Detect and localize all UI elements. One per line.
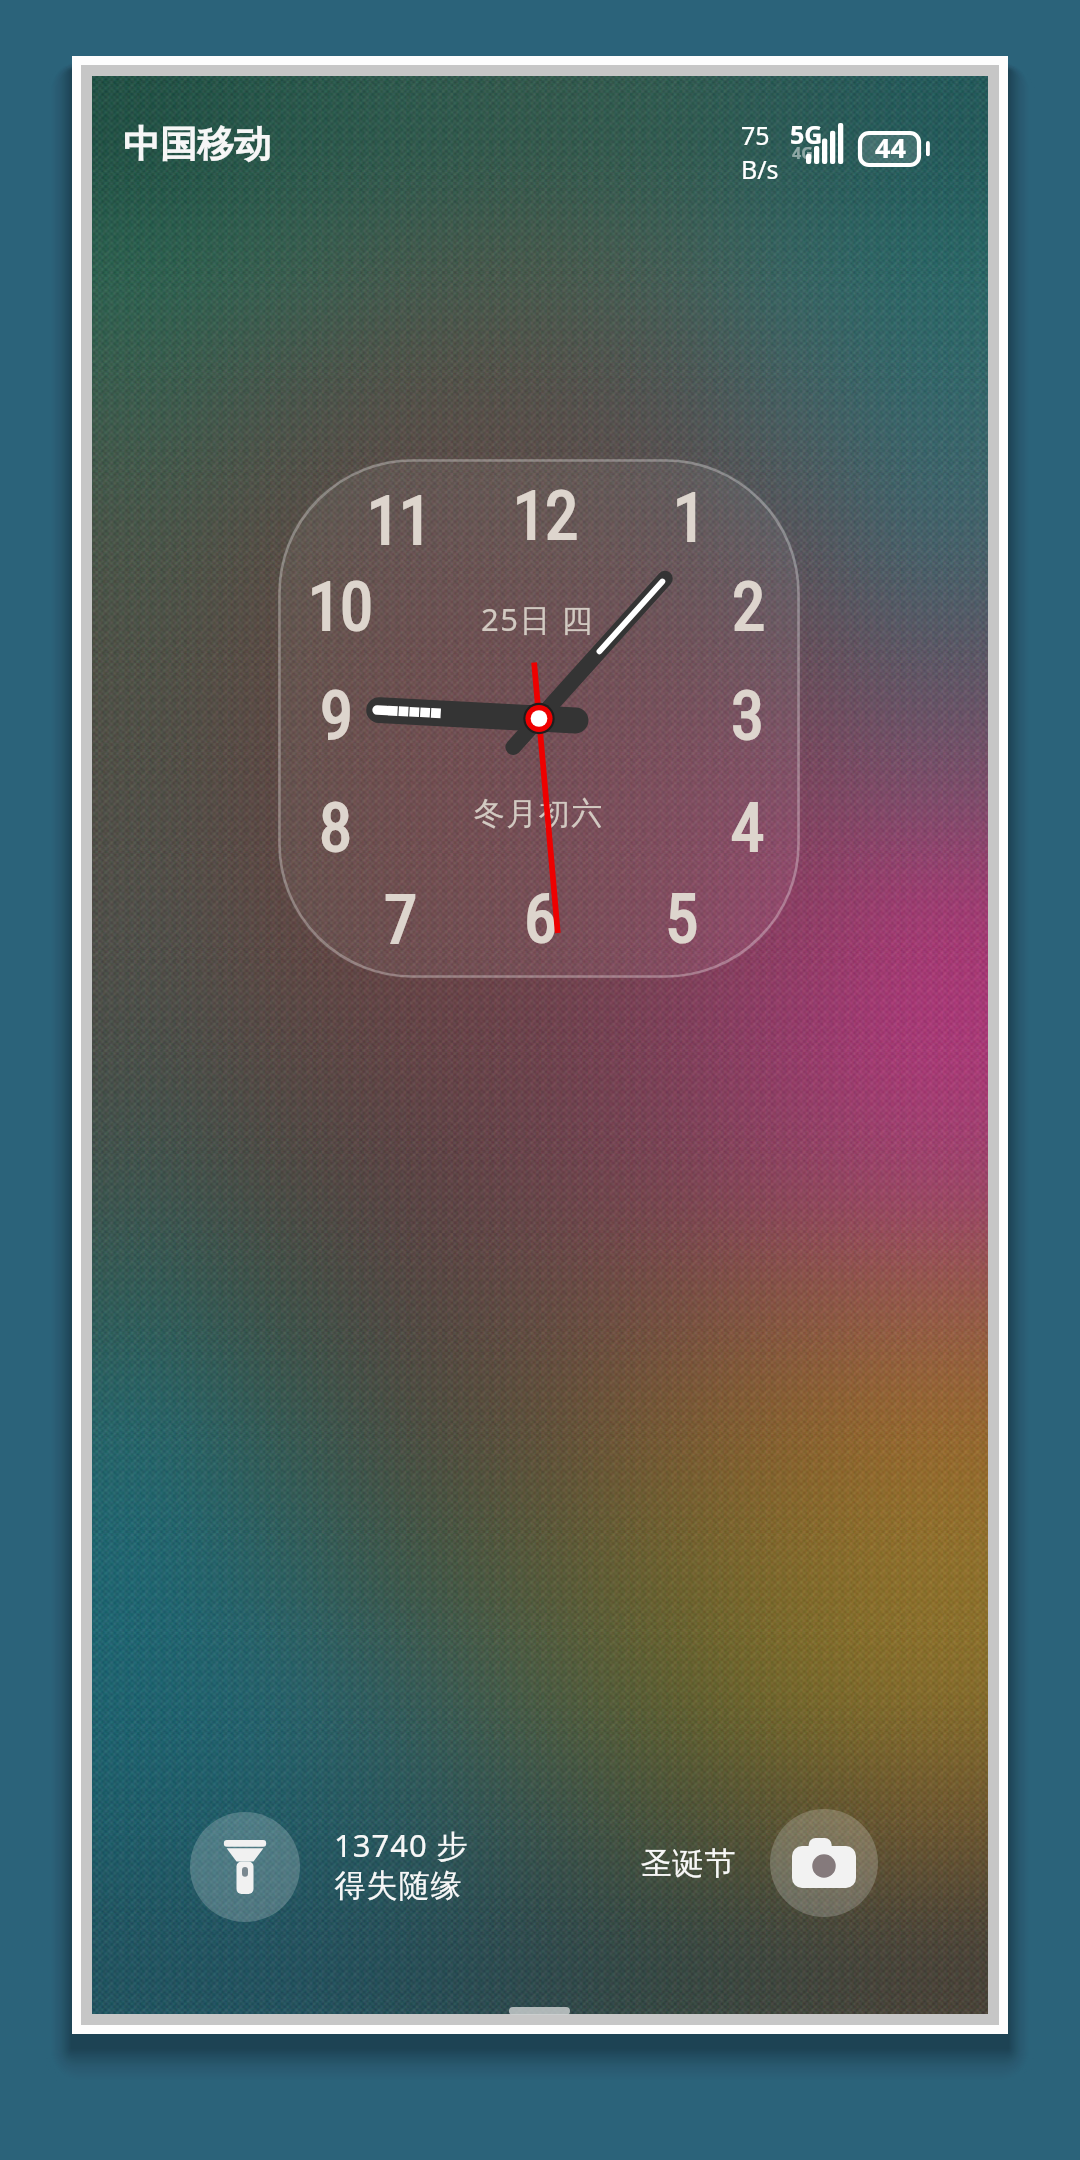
staticText: 6 <box>524 880 557 959</box>
staticText: 9 <box>320 677 353 756</box>
staticText: 12 <box>513 477 578 556</box>
staticText: 10 <box>308 568 373 647</box>
staticText: 4 <box>731 789 764 868</box>
staticText: 5G <box>790 117 823 151</box>
staticText: 13740 步 <box>334 1824 469 1866</box>
staticText: 得失随缘 <box>334 1866 462 1905</box>
staticText: 8 <box>319 789 352 868</box>
staticText: 5 <box>665 880 698 959</box>
button[interactable]: 12 <box>278 459 800 978</box>
staticText: 1 <box>673 479 706 558</box>
staticText: 冬月初六 <box>473 794 603 833</box>
staticText: B/s <box>741 152 779 186</box>
staticText: 3 <box>731 677 764 756</box>
staticText: 44 <box>875 129 906 166</box>
staticText: 2 <box>732 568 765 647</box>
staticText: 4G <box>792 142 813 164</box>
staticText: 圣诞节 <box>640 1844 736 1883</box>
button[interactable]: Camera <box>770 1809 878 1917</box>
staticText: 11 <box>367 482 432 561</box>
staticText: 25日 四 <box>481 598 595 640</box>
button[interactable]: Flashlight <box>190 1812 300 1922</box>
staticText: 75 <box>741 118 770 152</box>
staticText: 中国移动 <box>123 121 271 168</box>
staticText: 7 <box>384 881 417 960</box>
